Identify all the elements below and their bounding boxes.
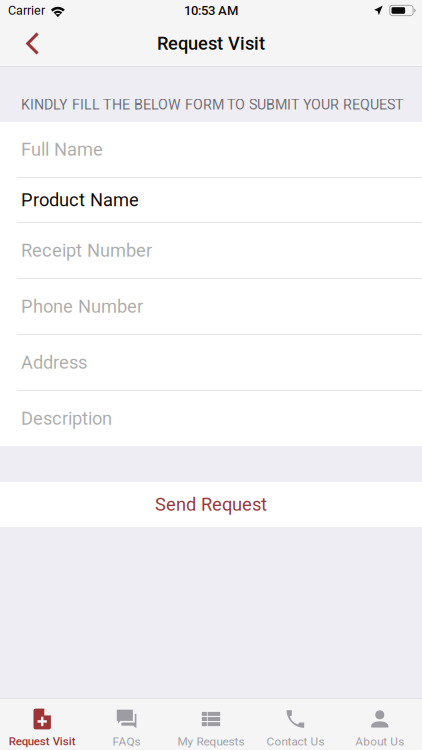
button[interactable]: About Us [338,699,422,750]
staticText: Description [21,408,112,429]
button[interactable]: FAQs [84,699,169,750]
button[interactable]: Contact Us [253,699,338,750]
button[interactable]: My Requests [169,699,253,750]
button[interactable]: Full Name [0,122,422,177]
staticText: Full Name [21,139,103,160]
staticText: Product Name [21,189,139,211]
button[interactable]: Receipt Number [0,223,422,278]
button[interactable]: Address [0,335,422,390]
staticText: KINDLY FILL THE BELOW FORM TO SUBMIT YOU… [21,96,404,113]
staticText: Receipt Number [21,240,152,261]
staticText: Request Visit [9,734,76,748]
button[interactable]: Send Request [0,482,422,527]
staticText: Carrier [8,3,45,18]
staticText: Contact Us [266,734,324,748]
button[interactable]: Phone Number [0,279,422,334]
button[interactable]: Product Name [0,178,422,222]
button[interactable]: Description [0,391,422,446]
staticText: Send Request [155,494,267,515]
staticText: Request Visit [157,33,265,54]
button[interactable]: Request Visit [0,699,84,750]
staticText: About Us [355,734,404,748]
staticText: My Requests [177,734,244,748]
staticText: FAQs [113,734,141,748]
button[interactable]: Back [0,21,55,66]
staticText: 10:53 AM [184,3,238,18]
staticText: Phone Number [21,296,143,317]
staticText: Address [21,352,87,373]
